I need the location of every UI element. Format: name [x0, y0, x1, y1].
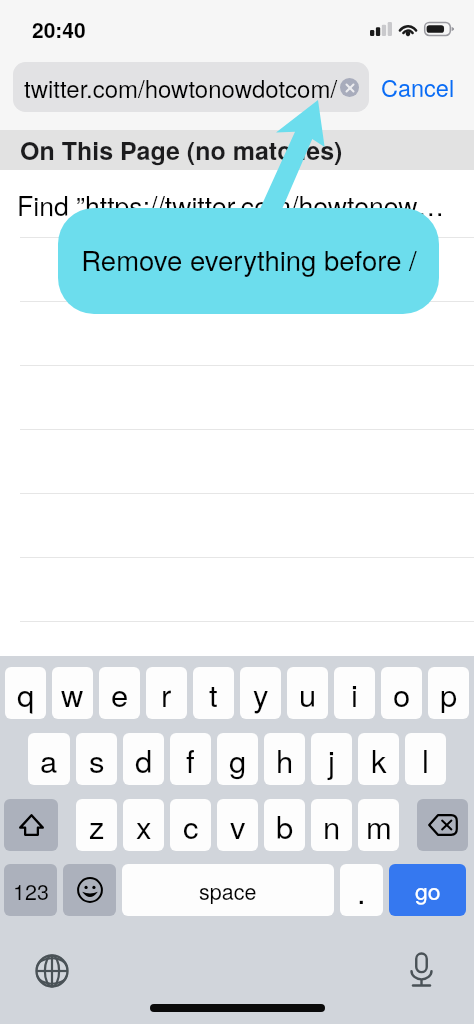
staticText: 20:40: [32, 14, 86, 44]
staticText: u: [299, 671, 317, 715]
staticText: k: [371, 737, 387, 781]
button[interactable]: twitter.com/howtonowdotcom/: [13, 62, 369, 112]
button[interactable]: Backspace: [417, 799, 468, 851]
staticText: 123: [13, 875, 49, 906]
button[interactable]: c: [170, 799, 211, 851]
staticText: n: [323, 803, 341, 847]
button[interactable]: i: [334, 667, 375, 719]
button[interactable]: k: [358, 733, 399, 785]
button[interactable]: p: [428, 667, 469, 719]
staticText: a: [40, 737, 58, 781]
button[interactable]: e: [99, 667, 140, 719]
staticText: m: [366, 803, 392, 847]
button[interactable]: x: [123, 799, 164, 851]
staticText: p: [440, 671, 458, 715]
button[interactable]: f: [170, 733, 211, 785]
button[interactable]: a: [28, 733, 70, 785]
button[interactable]: r: [146, 667, 187, 719]
staticText: Find ”https://twitter.com/howtonow…: [17, 185, 445, 223]
button[interactable]: space: [122, 864, 334, 916]
staticText: Remove everything before /: [81, 239, 417, 278]
staticText: y: [253, 671, 269, 715]
staticText: c: [183, 803, 199, 847]
button[interactable]: Dictation: [399, 948, 443, 992]
button[interactable]: w: [52, 667, 93, 719]
button[interactable]: z: [76, 799, 117, 851]
staticText: b: [276, 803, 294, 847]
staticText: i: [351, 671, 358, 715]
button[interactable]: 123: [4, 864, 57, 916]
button[interactable]: s: [76, 733, 117, 785]
button[interactable]: y: [240, 667, 281, 719]
button[interactable]: Find ”https://twitter.com/howtonow…: [0, 170, 474, 237]
staticText: o: [393, 671, 411, 715]
button[interactable]: h: [264, 733, 305, 785]
staticText: On This Page (no matches): [20, 132, 343, 168]
staticText: f: [186, 737, 195, 781]
staticText: .: [357, 868, 366, 912]
staticText: Cancel: [381, 70, 455, 104]
staticText: e: [111, 671, 129, 715]
button[interactable]: go: [389, 864, 466, 916]
button[interactable]: [0, 302, 474, 365]
button[interactable]: q: [5, 667, 46, 719]
staticText: h: [276, 737, 294, 781]
staticText: x: [136, 803, 152, 847]
button[interactable]: n: [311, 799, 352, 851]
button[interactable]: g: [217, 733, 258, 785]
button[interactable]: b: [264, 799, 305, 851]
button[interactable]: Shift: [4, 799, 58, 851]
button[interactable]: Emoji keyboard: [63, 864, 116, 916]
staticText: v: [230, 803, 246, 847]
staticText: space: [199, 875, 257, 906]
button[interactable]: .: [340, 864, 383, 916]
button[interactable]: Clear text: [340, 78, 359, 97]
button[interactable]: o: [381, 667, 422, 719]
button[interactable]: [0, 238, 474, 301]
staticText: r: [161, 671, 172, 715]
staticText: s: [89, 737, 105, 781]
button[interactable]: v: [217, 799, 258, 851]
button[interactable]: t: [193, 667, 234, 719]
button[interactable]: d: [123, 733, 164, 785]
staticText: q: [17, 671, 35, 715]
staticText: z: [89, 803, 105, 847]
staticText: g: [229, 737, 247, 781]
staticText: twitter.com/howtonowdotcom/: [24, 70, 338, 104]
button[interactable]: m: [358, 799, 399, 851]
button[interactable]: Change keyboard: [30, 949, 74, 993]
staticText: t: [209, 671, 218, 715]
button[interactable]: l: [405, 733, 446, 785]
button[interactable]: u: [287, 667, 328, 719]
button[interactable]: Cancel: [381, 62, 455, 112]
staticText: w: [61, 671, 84, 715]
button[interactable]: j: [311, 733, 352, 785]
staticText: d: [135, 737, 153, 781]
staticText: j: [328, 737, 335, 781]
staticText: go: [415, 874, 441, 907]
staticText: l: [422, 737, 429, 781]
